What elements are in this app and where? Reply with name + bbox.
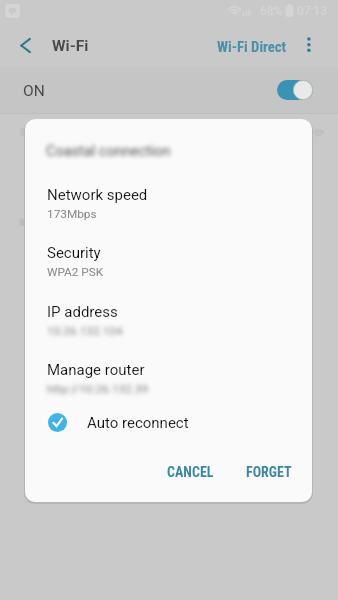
staticText: 07:13 [297, 4, 327, 18]
staticText: Wi-Fi [52, 37, 89, 55]
staticText: 68% [260, 4, 283, 18]
staticText: Security [47, 244, 101, 262]
staticText: IP address [47, 303, 118, 321]
staticText: WPA2 PSK [47, 265, 104, 279]
staticText: Wi-Fi Direct [217, 38, 287, 55]
staticText: 10.26.132.104 [47, 324, 123, 338]
staticText: ON [23, 82, 45, 100]
staticText: Network speed [47, 186, 148, 204]
staticText: FORGET [246, 464, 292, 480]
staticText: Manage router [47, 361, 145, 379]
staticText: CANCEL [167, 464, 214, 480]
button[interactable]: CANCEL [159, 457, 222, 487]
button[interactable]: More options [295, 29, 323, 57]
staticText: Auto reconnect [87, 414, 189, 432]
button[interactable]: Wi-Fi on/off [277, 80, 313, 100]
staticText: http://10.26.132.39 [47, 382, 149, 396]
staticText: 173Mbps [47, 207, 97, 221]
button[interactable]: Auto reconnect [25, 407, 312, 438]
button[interactable]: Navigate up [6, 29, 38, 61]
staticText: Coastal connection [46, 143, 171, 160]
button[interactable]: FORGET [238, 457, 300, 487]
button[interactable]: Wi-Fi Direct [212, 33, 292, 60]
